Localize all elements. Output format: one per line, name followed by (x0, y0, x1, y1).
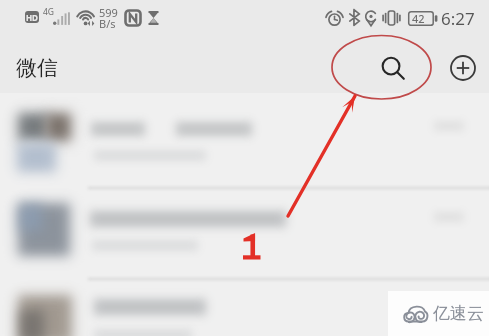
staticText: 微信 (16, 55, 58, 81)
staticText: 42 (412, 11, 425, 26)
staticText: 亿速云 (433, 303, 484, 324)
staticText: B/s (99, 16, 116, 31)
staticText: 4G (43, 6, 55, 18)
staticText: 6:27 (441, 7, 475, 30)
button[interactable] (0, 99, 489, 190)
staticText: HD (26, 12, 38, 23)
staticText: 599 (99, 5, 118, 20)
button[interactable] (0, 281, 489, 336)
button[interactable]: Search (370, 46, 414, 90)
button[interactable] (0, 190, 489, 281)
button[interactable]: Add (441, 46, 485, 90)
